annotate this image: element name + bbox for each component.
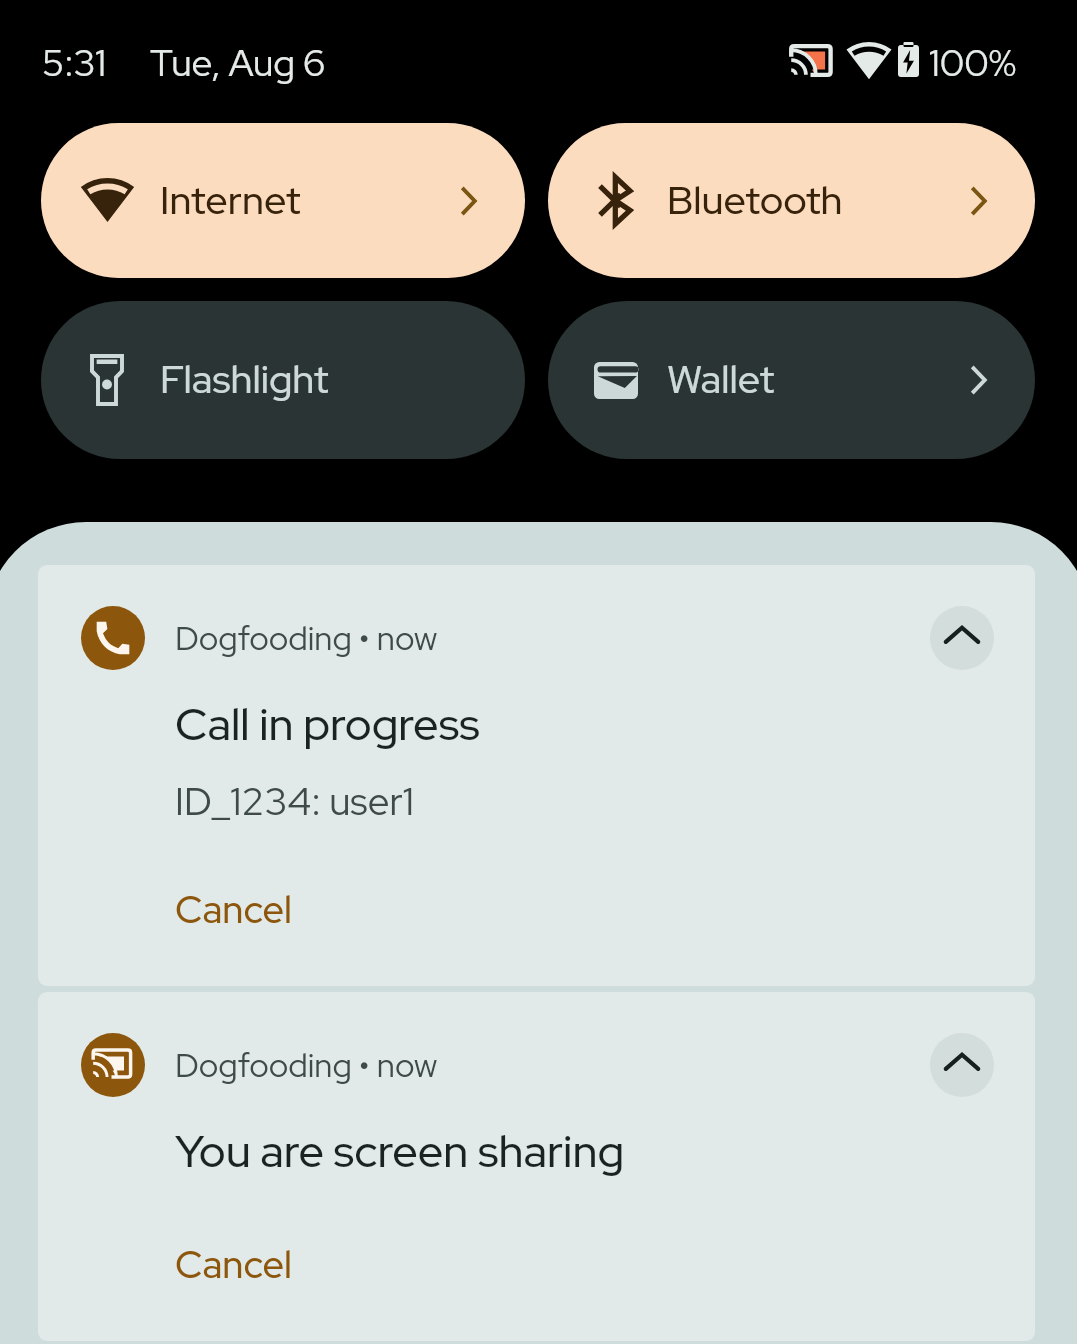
staticText: Internet [160, 174, 301, 226]
staticText: Dogfooding • now [175, 616, 438, 660]
button[interactable]: Collapse notification [930, 606, 994, 670]
staticText: ID_1234: user1 [175, 776, 414, 827]
staticText: Flashlight [160, 353, 329, 405]
staticText: Call in progress [175, 694, 480, 754]
button[interactable]: Dogfooding • now [38, 565, 1035, 986]
staticText: Bluetooth [667, 174, 843, 226]
button[interactable]: Cancel [175, 884, 293, 934]
staticText: You are screen sharing [175, 1121, 625, 1181]
staticText: Cancel [175, 884, 293, 934]
staticText: Tue, Aug 6 [150, 38, 326, 87]
other: Wi-Fi [845, 42, 893, 80]
button[interactable]: Internet [41, 123, 525, 278]
button[interactable]: Bluetooth [548, 123, 1035, 278]
button[interactable]: Cancel [175, 1239, 293, 1289]
button[interactable]: Dogfooding • now [38, 992, 1035, 1341]
staticText: Wallet [667, 353, 775, 405]
staticText: Dogfooding • now [175, 1043, 438, 1087]
button[interactable]: Collapse notification [930, 1033, 994, 1097]
staticText: 5:31 [42, 38, 106, 87]
button[interactable]: Flashlight [41, 301, 525, 459]
staticText: Cancel [175, 1239, 293, 1289]
other: Battery charging [898, 42, 919, 77]
button[interactable]: Wallet [548, 301, 1035, 459]
staticText: 100% [929, 38, 1017, 87]
other: Screen casting [790, 43, 831, 78]
